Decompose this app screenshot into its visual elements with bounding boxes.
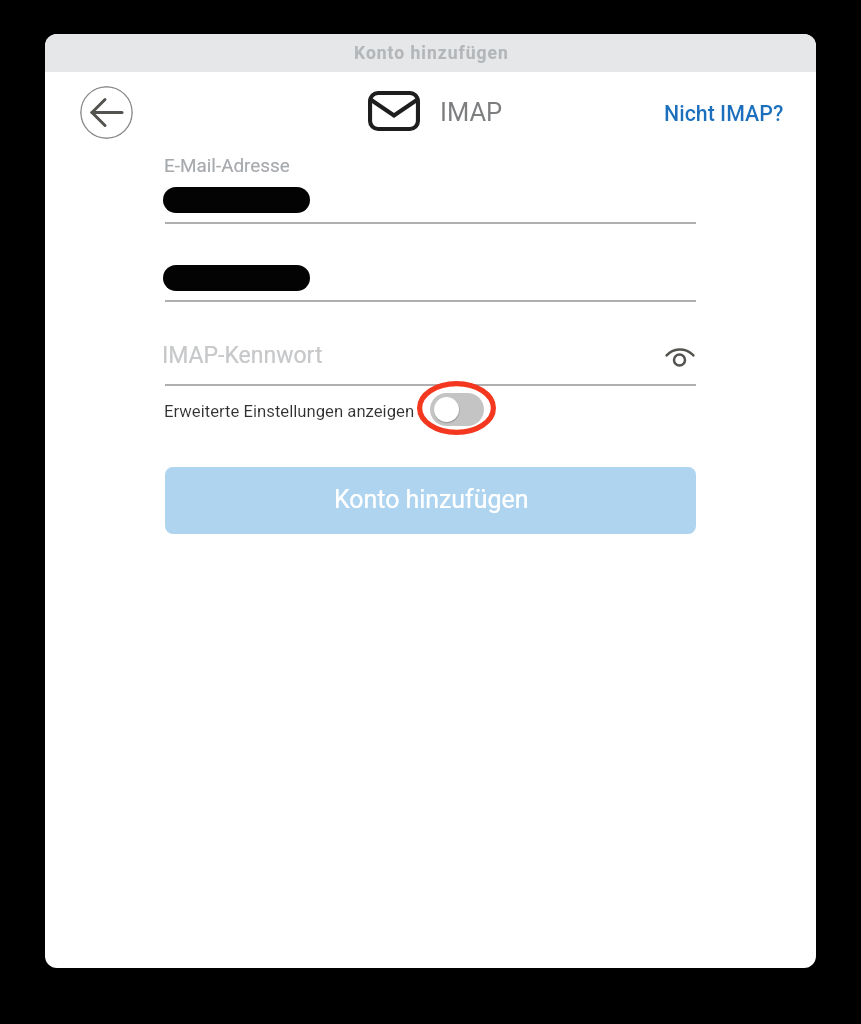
staticText: Nicht IMAP? <box>664 101 784 126</box>
button[interactable]: Erweiterte Einstellungen anzeigen <box>430 393 484 426</box>
button[interactable]: Nicht IMAP? <box>653 89 793 131</box>
staticText: Konto hinzufügen <box>354 43 509 64</box>
button[interactable]: E-Mail-Adresse <box>165 180 696 224</box>
button[interactable]: Passwort anzeigen <box>658 338 702 382</box>
button[interactable]: IMAP-Kennwort <box>165 336 645 384</box>
staticText: Konto hinzufügen <box>334 485 529 514</box>
staticText: IMAP <box>440 97 503 127</box>
staticText: IMAP-Kennwort <box>162 342 323 369</box>
button[interactable]: Konto hinzufügen <box>165 467 696 534</box>
button[interactable]: Benutzername <box>165 258 696 302</box>
button[interactable]: Zurück <box>80 86 133 139</box>
staticText: Erweiterte Einstellungen anzeigen <box>164 402 415 422</box>
staticText: E-Mail-Adresse <box>164 154 290 176</box>
